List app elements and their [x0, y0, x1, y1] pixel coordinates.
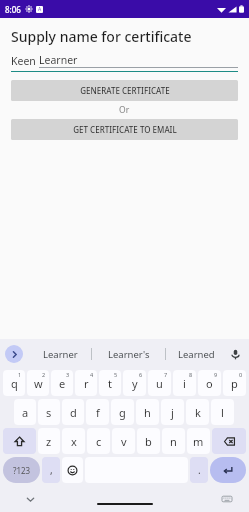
button[interactable]: i: [173, 370, 196, 396]
button[interactable]: ,: [42, 457, 60, 483]
button[interactable]: f: [86, 399, 109, 425]
staticText: l: [221, 405, 224, 420]
button[interactable]: c: [87, 428, 110, 454]
staticText: .: [198, 463, 201, 477]
staticText: n: [170, 434, 177, 449]
button[interactable]: n: [162, 428, 185, 454]
staticText: 3: [66, 371, 70, 378]
staticText: ?123: [13, 465, 31, 476]
button[interactable]: q: [3, 370, 25, 396]
button[interactable]: e: [51, 370, 73, 396]
button[interactable]: GET CERTIFICATE TO EMAIL: [11, 119, 238, 140]
button[interactable]: Shift: [3, 428, 36, 454]
staticText: s: [46, 405, 52, 420]
staticText: v: [121, 434, 127, 449]
staticText: 0: [239, 371, 243, 378]
staticText: 8: [189, 371, 193, 378]
staticText: d: [70, 405, 77, 420]
button[interactable]: Voice input: [227, 339, 244, 369]
button[interactable]: Learner: [30, 339, 91, 369]
staticText: Learner's: [108, 348, 150, 361]
staticText: Or: [119, 104, 130, 116]
button[interactable]: Emoji: [62, 457, 83, 483]
button[interactable]: t: [99, 370, 121, 396]
staticText: g: [119, 405, 126, 420]
button[interactable]: z: [38, 428, 60, 454]
button[interactable]: l: [211, 399, 234, 425]
staticText: z: [46, 434, 52, 449]
staticText: Learner: [39, 53, 78, 67]
staticText: r: [84, 376, 89, 391]
button[interactable]: a: [14, 399, 36, 425]
button[interactable]: x: [62, 428, 85, 454]
button[interactable]: Switch keyboard: [219, 491, 235, 507]
staticText: 4: [90, 371, 94, 378]
button[interactable]: Enter: [210, 457, 246, 483]
button[interactable]: Learner's: [92, 339, 165, 369]
staticText: t: [108, 376, 112, 391]
staticText: GENERATE CERTIFICATE: [80, 85, 170, 96]
staticText: 8:06: [5, 4, 21, 15]
staticText: e: [59, 376, 66, 391]
staticText: x: [71, 434, 77, 449]
staticText: h: [144, 405, 151, 420]
staticText: ,: [50, 463, 53, 477]
button[interactable]: p: [223, 370, 246, 396]
button[interactable]: b: [137, 428, 160, 454]
staticText: k: [195, 405, 201, 420]
staticText: i: [183, 376, 186, 391]
staticText: 1: [18, 371, 22, 378]
button[interactable]: Backspace: [212, 428, 246, 454]
button[interactable]: Learned: [166, 339, 227, 369]
button[interactable]: s: [38, 399, 60, 425]
staticText: c: [96, 434, 102, 449]
staticText: A: [38, 6, 42, 13]
staticText: b: [145, 434, 152, 449]
staticText: 5: [114, 371, 118, 378]
staticText: f: [96, 405, 100, 420]
button[interactable]: d: [62, 399, 84, 425]
staticText: m: [193, 434, 204, 449]
button[interactable]: GENERATE CERTIFICATE: [11, 80, 238, 101]
button[interactable]: Keen: [11, 53, 238, 72]
staticText: Learner: [43, 348, 78, 361]
button[interactable]: v: [112, 428, 135, 454]
button[interactable]: j: [161, 399, 184, 425]
staticText: o: [206, 376, 213, 391]
staticText: 9: [214, 371, 218, 378]
button[interactable]: w: [27, 370, 49, 396]
button[interactable]: g: [111, 399, 134, 425]
staticText: 7: [164, 371, 168, 378]
button[interactable]: r: [75, 370, 97, 396]
button[interactable]: ?123: [3, 457, 40, 483]
button[interactable]: u: [148, 370, 171, 396]
staticText: a: [22, 405, 29, 420]
staticText: 6: [139, 371, 143, 378]
staticText: GET CERTIFICATE TO EMAIL: [73, 124, 177, 135]
staticText: 2: [42, 371, 46, 378]
staticText: w: [34, 376, 43, 391]
staticText: Keen: [11, 54, 39, 68]
staticText: j: [171, 405, 174, 420]
button[interactable]: h: [136, 399, 159, 425]
staticText: Supply name for certificate: [11, 27, 192, 46]
button[interactable]: y: [123, 370, 146, 396]
button[interactable]: .: [190, 457, 208, 483]
button[interactable]: o: [198, 370, 221, 396]
staticText: y: [132, 376, 138, 391]
staticText: p: [231, 376, 238, 391]
button[interactable]: m: [187, 428, 210, 454]
staticText: u: [156, 376, 163, 391]
button[interactable]: k: [186, 399, 209, 425]
button[interactable]: Hide keyboard: [22, 491, 38, 507]
staticText: q: [11, 376, 18, 391]
staticText: Learned: [178, 348, 215, 361]
button[interactable]: More suggestions: [5, 345, 23, 363]
